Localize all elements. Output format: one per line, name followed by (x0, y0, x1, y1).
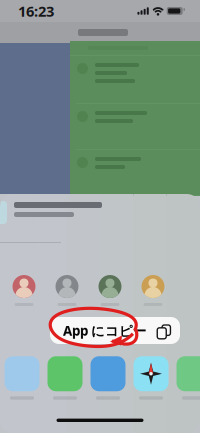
button[interactable]: Contact (2, 275, 45, 306)
button[interactable]: App (0, 356, 43, 400)
button[interactable]: App にコピー (50, 317, 180, 344)
button[interactable]: App (172, 356, 200, 400)
staticText: 16:23 (18, 1, 54, 21)
button[interactable]: Contact (45, 275, 88, 306)
staticText: App にコピー (63, 322, 146, 339)
button[interactable]: Contact (131, 275, 174, 306)
button[interactable]: App (43, 356, 86, 400)
button[interactable]: App (129, 356, 172, 400)
button[interactable]: App (86, 356, 129, 400)
button[interactable]: Contact (88, 275, 131, 306)
